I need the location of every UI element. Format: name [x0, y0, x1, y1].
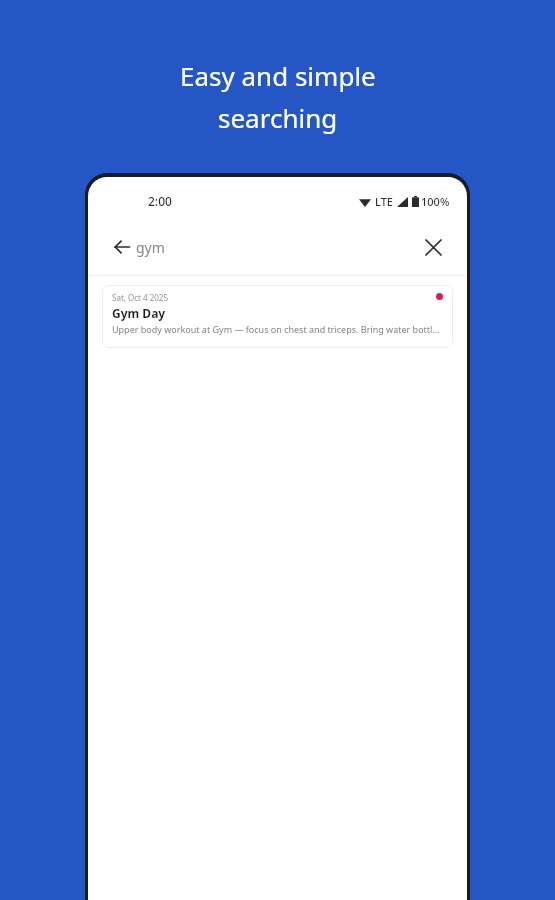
staticText: LTE [375, 194, 393, 209]
staticText: Upper body workout at Gym — focus on che… [112, 323, 443, 335]
staticText: 2:00 [148, 193, 172, 209]
staticText: Sat, Oct 4 2025 [112, 292, 169, 303]
button[interactable]: Sat, Oct 4 2025 [102, 285, 453, 348]
staticText: Easy and simple [180, 58, 376, 93]
button[interactable]: Clear search [415, 229, 451, 265]
button[interactable]: gym [136, 229, 396, 265]
staticText: 100% [421, 194, 450, 209]
staticText: searching [218, 100, 338, 135]
staticText: Gym Day [112, 305, 166, 321]
staticText: gym [136, 238, 165, 257]
button[interactable]: Back [104, 229, 140, 265]
